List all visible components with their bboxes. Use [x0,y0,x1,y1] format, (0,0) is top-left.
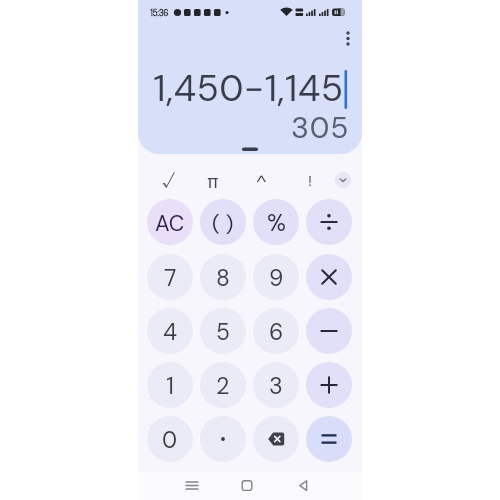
staticText: AC [155,209,185,238]
staticText: √ [162,170,175,192]
staticText: ! [308,171,312,191]
staticText: 1 [166,371,174,401]
button[interactable] [306,199,352,245]
staticText: 0 [162,425,178,455]
button[interactable] [306,254,352,300]
staticText: 2 [216,371,230,401]
button[interactable] [233,474,261,498]
button[interactable]: 9 [253,254,299,300]
button[interactable]: ^ [247,166,275,194]
staticText: ^ [256,170,267,192]
staticText: 5 [216,317,230,347]
button[interactable]: 2 [200,362,246,408]
staticText: ( ) [212,210,234,237]
button[interactable]: 3 [253,362,299,408]
button[interactable] [178,474,206,498]
button[interactable] [253,416,299,462]
button[interactable]: ( ) [200,199,246,245]
button[interactable] [306,416,352,462]
staticText: 9 [269,263,284,293]
staticText: 1,450−1,145 [153,64,344,112]
button[interactable] [335,172,351,188]
button[interactable]: 0 [147,416,193,462]
button[interactable]: 7 [147,254,193,300]
staticText: 4 [163,317,178,347]
button[interactable] [306,308,352,354]
staticText: % [267,208,286,238]
button[interactable] [290,474,318,498]
staticText: 6 [269,317,284,347]
button[interactable]: √ [154,166,182,194]
button[interactable]: 6 [253,308,299,354]
staticText: 305 [291,108,350,147]
button[interactable]: % [253,199,299,245]
staticText: 3 [269,371,283,401]
staticText: 15:36 [150,8,169,19]
button[interactable]: 8 [200,254,246,300]
button[interactable]: 4 [147,308,193,354]
staticText: π [207,170,219,193]
button[interactable]: 5 [200,308,246,354]
button[interactable] [200,416,246,462]
button[interactable]: ! [296,166,324,194]
button[interactable]: 1 [147,362,193,408]
button[interactable]: π [199,166,227,194]
button[interactable]: AC [147,199,193,245]
staticText: 8 [216,263,230,293]
button[interactable] [306,362,352,408]
staticText: 7 [164,263,177,293]
